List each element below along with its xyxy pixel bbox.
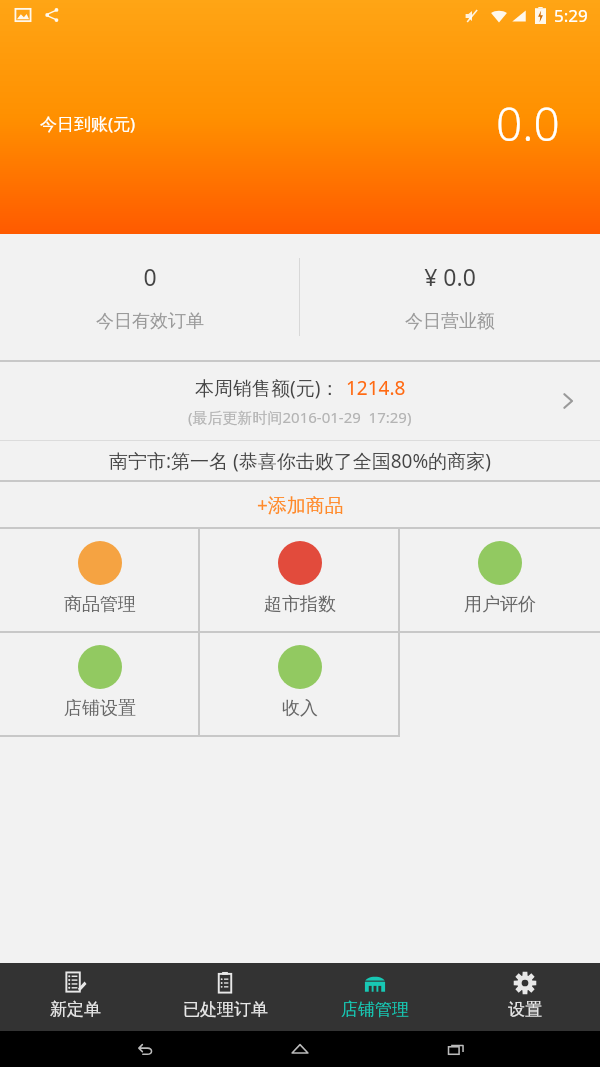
button[interactable]: 店铺设置: [0, 633, 200, 735]
staticText: 店铺管理: [341, 999, 409, 1020]
staticText: 商品管理: [64, 593, 136, 616]
other: Home: [289, 1038, 311, 1060]
button[interactable]: 店铺管理: [300, 963, 450, 1031]
other: Back: [134, 1038, 156, 1060]
button[interactable]: 用户评价: [400, 529, 600, 631]
button[interactable]: ¥ 0.0: [300, 234, 600, 360]
staticText: ¥ 0.0: [424, 261, 476, 292]
other: 已处理订单: [213, 971, 237, 995]
other: Recents: [445, 1038, 467, 1060]
staticText: +添加商品: [257, 492, 344, 518]
staticText: 南宁市:第一名 (恭喜你击败了全国80%的商家): [109, 448, 491, 474]
other: 新定单: [63, 971, 87, 995]
staticText: (最后更新时间2016-01-29 17:29): [188, 407, 412, 427]
staticText: 收入: [282, 697, 318, 720]
button[interactable]: 已处理订单: [150, 963, 300, 1031]
staticText: 今日有效订单: [96, 310, 204, 333]
staticText: 超市指数: [264, 593, 336, 616]
staticText: 店铺设置: [64, 697, 136, 720]
staticText: 5:29: [554, 4, 588, 27]
other: 设置: [513, 971, 537, 995]
staticText: 今日到账(元): [40, 112, 136, 135]
staticText: 0: [143, 261, 157, 292]
staticText: 设置: [508, 999, 542, 1020]
other: 店铺管理: [363, 971, 387, 995]
button[interactable]: 新定单: [0, 963, 150, 1031]
staticText: 0.0: [496, 92, 560, 155]
button[interactable]: 设置: [450, 963, 600, 1031]
staticText: 用户评价: [464, 593, 536, 616]
button[interactable]: 收入: [200, 633, 400, 735]
staticText: 本周销售额(元)：: [195, 375, 340, 401]
staticText: 新定单: [50, 999, 101, 1020]
staticText: 已处理订单: [183, 999, 268, 1020]
button[interactable]: +添加商品: [0, 482, 600, 527]
staticText: 今日营业额: [405, 310, 495, 333]
staticText: 1214.8: [346, 375, 406, 401]
button[interactable]: 0: [0, 234, 299, 360]
button[interactable]: 商品管理: [0, 529, 200, 631]
button[interactable]: 超市指数: [200, 529, 400, 631]
button[interactable]: 本周销售额(元)：: [0, 362, 600, 480]
